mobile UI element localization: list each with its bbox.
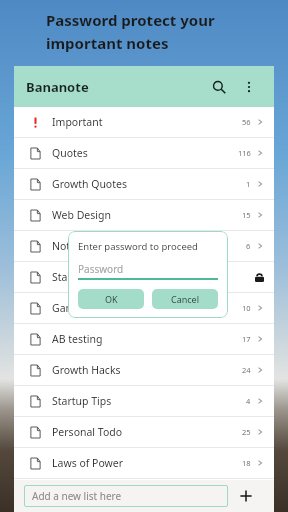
staticText: Startup	[52, 270, 89, 284]
button[interactable]: Growth Hacks	[14, 355, 274, 385]
staticText: Growth Hacks	[52, 363, 121, 377]
staticText: 24	[242, 365, 251, 375]
button[interactable]: Laws of Power	[14, 448, 274, 478]
staticText: 25	[242, 427, 251, 437]
button[interactable]: Quotes	[14, 138, 274, 168]
button[interactable]: Web Design	[14, 200, 274, 230]
staticText: AB testing	[52, 332, 103, 346]
staticText: 56	[242, 117, 251, 127]
staticText: Add a new list here	[32, 489, 122, 503]
button[interactable]: OK	[78, 289, 144, 309]
button[interactable]: Growth Quotes	[14, 169, 274, 199]
button[interactable]: Personal Todo	[14, 417, 274, 447]
staticText: 10	[242, 303, 251, 313]
button[interactable]: Search	[206, 74, 232, 100]
staticText: Quotes	[52, 146, 88, 160]
staticText: Laws of Power	[52, 456, 124, 470]
button[interactable]: Startup	[14, 262, 274, 292]
staticText: Growth Quotes	[52, 177, 127, 191]
staticText: Notes	[52, 239, 82, 253]
staticText: 6	[246, 241, 251, 251]
staticText: 116	[238, 148, 251, 158]
staticText: Startup Tips	[52, 394, 112, 408]
button[interactable]: Password	[78, 262, 218, 280]
staticText: OK	[105, 293, 118, 305]
staticText: Web Design	[52, 208, 111, 222]
staticText: Important	[52, 115, 103, 129]
staticText: 4	[246, 396, 251, 406]
staticText: important notes	[46, 33, 169, 53]
staticText: Cancel	[171, 293, 200, 305]
staticText: Password protect your	[46, 10, 215, 30]
staticText: Password	[78, 262, 124, 276]
button[interactable]: Cancel	[152, 289, 218, 309]
staticText: 1	[246, 179, 251, 189]
staticText: Games	[52, 301, 87, 315]
button[interactable]: Games	[14, 293, 274, 323]
staticText: Bananote	[26, 78, 89, 96]
staticText: 17	[242, 334, 251, 344]
button[interactable]: AB testing	[14, 324, 274, 354]
staticText: 15	[242, 210, 251, 220]
button[interactable]: Add list	[228, 481, 264, 511]
staticText: Enter password to proceed	[78, 240, 198, 253]
button[interactable]: Startup Tips	[14, 386, 274, 416]
button[interactable]: Add a new list here	[24, 485, 228, 507]
button[interactable]: Notes	[14, 231, 274, 261]
staticText: 18	[242, 458, 251, 468]
button[interactable]: More options	[236, 74, 262, 100]
staticText: Personal Todo	[52, 425, 123, 439]
button[interactable]: Important	[14, 107, 274, 137]
